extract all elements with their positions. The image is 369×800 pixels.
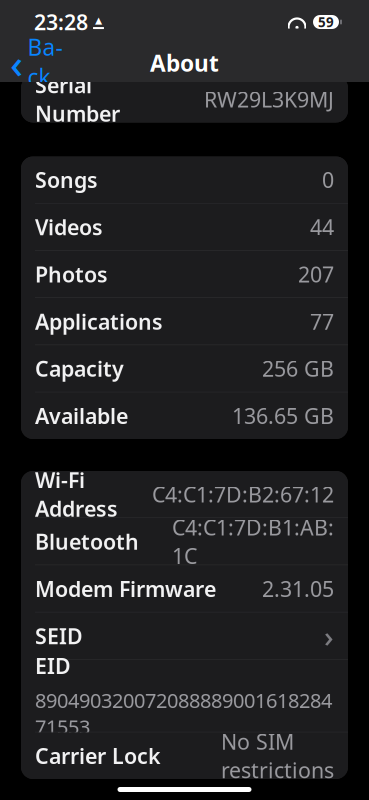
staticText: Carrier Lock: [35, 742, 161, 770]
staticText: Modem Firmware: [35, 574, 216, 603]
staticText: 89049032007208888900161828471553: [35, 687, 332, 740]
staticText: EID: [35, 652, 71, 680]
staticText: SEID: [35, 622, 83, 650]
button[interactable]: Capacity: [21, 345, 348, 392]
staticText: Applications: [35, 307, 163, 335]
button[interactable]: Wi-Fi Address: [21, 471, 348, 517]
button[interactable]: Bluetooth: [21, 518, 348, 565]
staticText: ‹: [10, 36, 23, 89]
staticText: Capacity: [35, 354, 124, 383]
staticText: 207: [298, 260, 334, 288]
staticText: 0: [322, 166, 334, 194]
button[interactable]: EID: [21, 660, 348, 732]
staticText: C4:C1:7D:B2:67:12: [152, 480, 334, 508]
button[interactable]: Videos: [21, 204, 348, 250]
staticText: Available: [35, 402, 128, 430]
button[interactable]: Available: [21, 392, 348, 439]
staticText: ›: [324, 616, 334, 655]
button[interactable]: Photos: [21, 251, 348, 297]
staticText: 23:28: [34, 8, 88, 36]
staticText: Photos: [35, 260, 108, 288]
button[interactable]: SEID: [21, 613, 348, 659]
button[interactable]: Serial Number: [21, 76, 348, 122]
staticText: RW29L3K9MJ: [204, 85, 334, 113]
button[interactable]: ‹: [0, 28, 64, 98]
staticText: Bluetooth: [35, 527, 139, 556]
staticText: ▲: [95, 15, 102, 26]
staticText: Wi-Fi Address: [35, 466, 118, 523]
staticText: 77: [310, 307, 334, 335]
staticText: No SIM restrictions: [221, 727, 334, 784]
staticText: Songs: [35, 166, 98, 194]
staticText: Videos: [35, 213, 103, 241]
staticText: Serial Number: [35, 71, 120, 128]
staticText: 2.31.05: [262, 574, 334, 603]
staticText: Back: [27, 32, 62, 92]
button[interactable]: Modem Firmware: [21, 565, 348, 612]
staticText: 44: [310, 213, 334, 241]
button[interactable]: Carrier Lock: [21, 732, 348, 779]
staticText: C4:C1:7D:B1:AB:1C: [172, 513, 334, 570]
staticText: 59: [318, 13, 334, 31]
staticText: About: [150, 48, 219, 78]
button[interactable]: Songs: [21, 156, 348, 203]
staticText: 136.65 GB: [232, 402, 334, 430]
staticText: 256 GB: [262, 354, 334, 383]
button[interactable]: Applications: [21, 298, 348, 345]
